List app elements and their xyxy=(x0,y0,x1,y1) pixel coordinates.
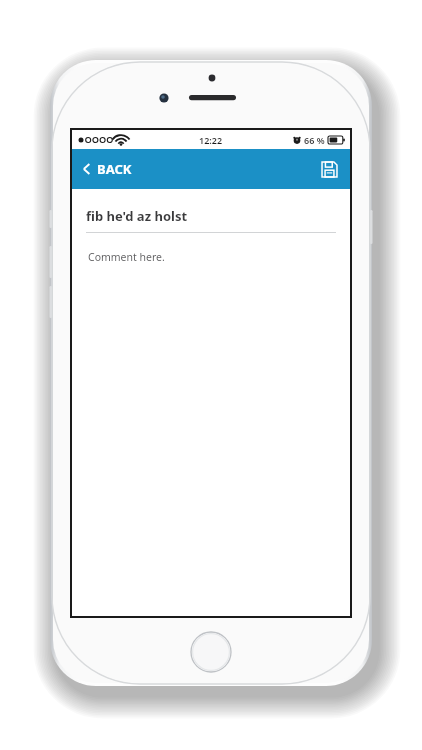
staticText: fib he'd az holst xyxy=(86,207,188,225)
staticText: Comment here. xyxy=(88,250,165,264)
button[interactable]: BACK xyxy=(72,149,146,189)
staticText: 12:22 xyxy=(199,134,223,146)
staticText: 66 % xyxy=(304,134,325,146)
button[interactable]: Home xyxy=(189,630,233,674)
staticText: BACK xyxy=(97,160,132,178)
button[interactable]: Save xyxy=(309,149,350,189)
